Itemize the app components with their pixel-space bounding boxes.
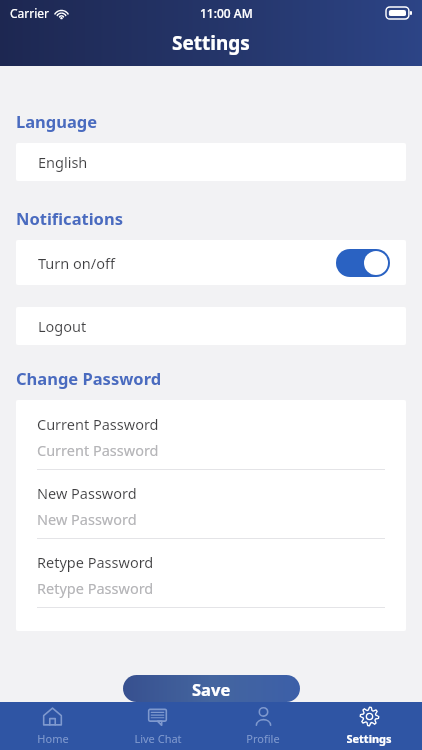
staticText: Notifications: [16, 207, 123, 229]
staticText: Change Password: [16, 367, 162, 389]
staticText: Carrier: [10, 5, 50, 21]
button[interactable]: Home: [0, 702, 105, 750]
staticText: English: [38, 152, 88, 172]
staticText: Live Chat: [134, 731, 182, 746]
staticText: Language: [16, 110, 98, 132]
button[interactable]: Retype Password: [37, 552, 385, 621]
button[interactable]: Current Password: [37, 414, 385, 483]
staticText: Retype Password: [37, 552, 154, 572]
staticText: Settings: [346, 731, 392, 746]
button[interactable]: Live Chat: [105, 702, 210, 750]
button[interactable]: English: [16, 143, 406, 181]
button[interactable]: Turn on/off: [16, 240, 406, 285]
button[interactable]: Profile: [210, 702, 316, 750]
staticText: Settings: [172, 30, 250, 56]
staticText: Home: [37, 731, 69, 746]
staticText: Save: [192, 678, 231, 700]
staticText: New Password: [37, 483, 137, 503]
staticText: Current Password: [37, 414, 159, 434]
button[interactable]: Logout: [16, 307, 406, 345]
button[interactable]: New Password: [37, 483, 385, 552]
staticText: Turn on/off: [38, 253, 115, 273]
staticText: New Password: [37, 509, 137, 529]
staticText: 11:00 AM: [200, 5, 253, 21]
staticText: Profile: [246, 731, 280, 746]
staticText: Current Password: [37, 440, 159, 460]
button[interactable]: Settings: [316, 702, 422, 750]
button[interactable]: Save: [123, 675, 300, 702]
staticText: Retype Password: [37, 578, 154, 598]
staticText: Logout: [38, 316, 87, 336]
